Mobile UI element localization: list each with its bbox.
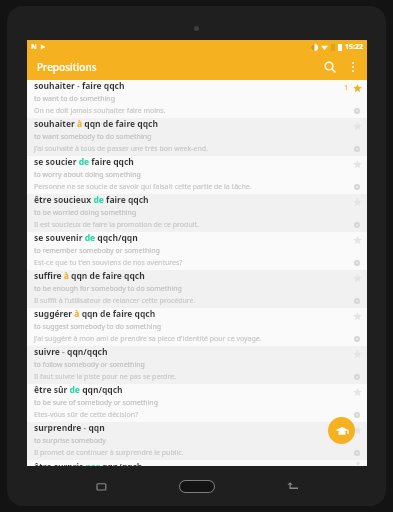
button[interactable]: Favourite xyxy=(351,310,363,322)
button[interactable]: Favourite xyxy=(351,348,363,360)
staticText: to surprise somebody xyxy=(34,436,106,446)
staticText: to suggest somebody to do something xyxy=(34,322,162,332)
staticText: Prepositions xyxy=(37,60,97,74)
button[interactable]: être surpris par qqn/qqch xyxy=(27,460,367,466)
staticText: N xyxy=(31,42,37,52)
staticText: être sûr de qqn/qqch xyxy=(34,384,123,396)
staticText: Il suffit à l'utilisateur de relancer ce… xyxy=(34,296,196,306)
button[interactable]: Details xyxy=(351,143,362,154)
staticText: surprendre - qqn xyxy=(34,422,105,434)
button[interactable]: être soucieux de faire qqch xyxy=(27,194,367,232)
button[interactable]: Details xyxy=(351,295,362,306)
staticText: to follow somebody or something xyxy=(34,360,145,370)
button[interactable]: Favourite xyxy=(351,386,363,398)
staticText: souhaiter - faire qqch xyxy=(34,80,125,92)
button[interactable]: surprendre - qqn xyxy=(27,422,367,460)
button[interactable]: souhaiter à qqn de faire qqch xyxy=(27,118,367,156)
button[interactable]: Details xyxy=(351,409,362,420)
button[interactable]: Details xyxy=(351,371,362,382)
staticText: se soucier de faire qqch xyxy=(34,156,134,168)
staticText: On ne doit jamais souhaiter faire moins. xyxy=(34,106,166,116)
button[interactable]: se souvenir de qqch/qqn xyxy=(27,232,367,270)
button[interactable]: être sûr de qqn/qqch xyxy=(27,384,367,422)
button[interactable]: Favourite xyxy=(351,272,363,284)
button[interactable]: Start learning xyxy=(328,417,355,444)
button[interactable]: Details xyxy=(351,181,362,192)
staticText: J'ai souhaité à tous de passer une très … xyxy=(34,144,209,154)
button[interactable]: Details xyxy=(351,257,362,268)
staticText: souhaiter à qqn de faire qqch xyxy=(34,118,158,130)
button[interactable]: Details xyxy=(351,105,362,116)
button[interactable]: Details xyxy=(351,333,362,344)
staticText: to be sure of somebody or something xyxy=(34,398,158,408)
staticText: Personne ne se soucie de savoir qui fais… xyxy=(34,182,252,192)
staticText: suggérer à qqn de faire qqch xyxy=(34,308,156,320)
button[interactable]: Details xyxy=(351,447,362,458)
button[interactable]: Favourite xyxy=(351,196,363,208)
button[interactable]: Recent apps xyxy=(47,471,157,501)
staticText: se souvenir de qqch/qqn xyxy=(34,232,138,244)
button[interactable]: Home xyxy=(157,471,237,501)
button[interactable]: Search xyxy=(318,55,342,79)
button[interactable]: Back xyxy=(237,471,347,501)
button[interactable]: suivre - qqn/qqch xyxy=(27,346,367,384)
staticText: to be enough for somebody to do somethin… xyxy=(34,284,182,294)
button[interactable]: Favourite xyxy=(351,424,363,436)
button[interactable]: suffire à qqn de faire qqch xyxy=(27,270,367,308)
staticText: être surpris par qqn/qqch xyxy=(34,461,143,466)
staticText: to want to do something xyxy=(34,94,115,104)
staticText: 1 xyxy=(344,83,349,93)
button[interactable]: Details xyxy=(351,219,362,230)
staticText: suivre - qqn/qqch xyxy=(34,346,108,358)
button[interactable]: se soucier de faire qqch xyxy=(27,156,367,194)
button[interactable]: Favourite xyxy=(351,120,363,132)
staticText: J'ai suggéré à mon ami de prendre sa pie… xyxy=(34,334,262,344)
staticText: Est-ce que tu t'en souviens de nos avent… xyxy=(34,258,183,268)
button[interactable]: souhaiter - faire qqch xyxy=(27,80,367,118)
button[interactable]: Favourite xyxy=(351,234,363,246)
staticText: 15:22 xyxy=(345,42,363,52)
staticText: Il promet de continuer à surprendre le p… xyxy=(34,448,184,458)
staticText: suffire à qqn de faire qqch xyxy=(34,270,145,282)
staticText: Etes-vous sûr de cette décision? xyxy=(34,410,139,420)
staticText: Il faut suivre la piste pour ne pas se p… xyxy=(34,372,176,382)
button[interactable]: Favourite xyxy=(351,158,363,170)
staticText: to remember someboby or something xyxy=(34,246,160,256)
staticText: to worry about doing something xyxy=(34,170,141,180)
staticText: être soucieux de faire qqch xyxy=(34,194,149,206)
staticText: to want somebody to do something xyxy=(34,132,152,142)
button[interactable]: suggérer à qqn de faire qqch xyxy=(27,308,367,346)
button[interactable]: More options xyxy=(342,56,364,78)
button[interactable]: Favourite xyxy=(351,82,363,94)
staticText: Il est soucieux de faire la promotion de… xyxy=(34,220,199,230)
staticText: to be worried doing something xyxy=(34,208,137,218)
